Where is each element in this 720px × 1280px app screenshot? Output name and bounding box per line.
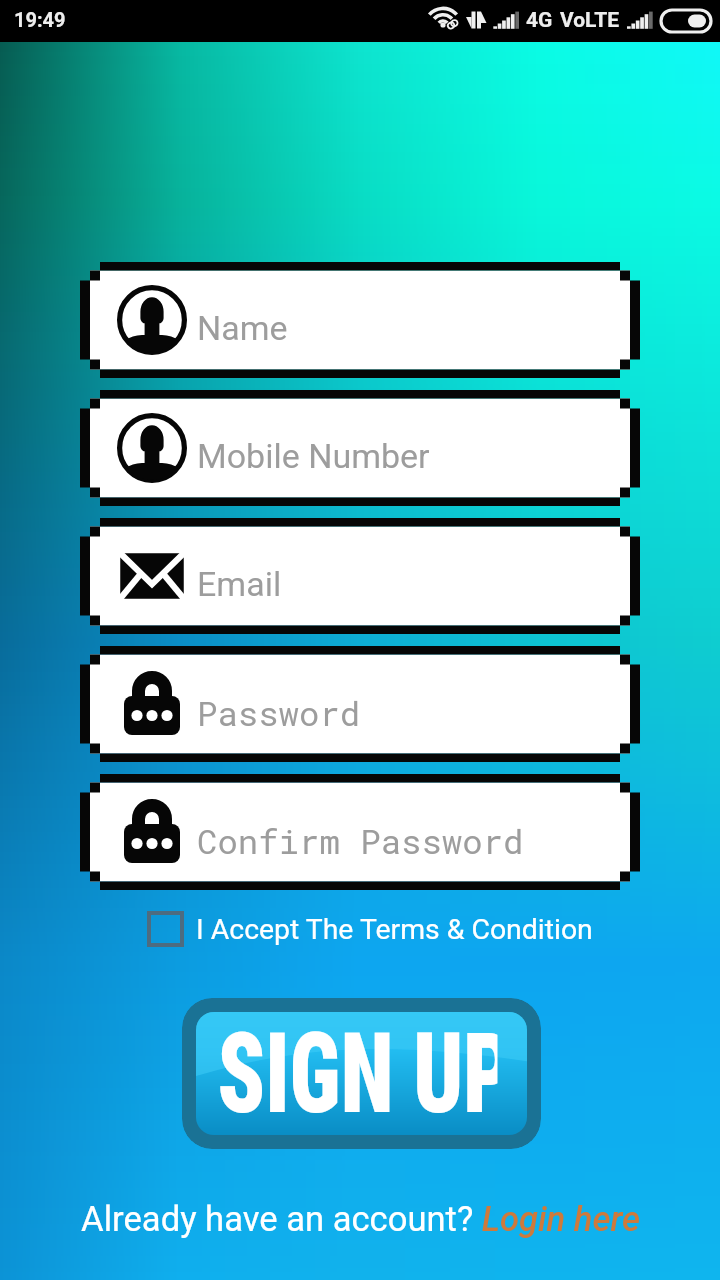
- button[interactable]: Name: [80, 262, 640, 378]
- staticText: I Accept The Terms & Condition: [196, 913, 593, 946]
- staticText: Already have an account? Login here: [81, 1199, 640, 1240]
- button[interactable]: Email: [80, 518, 640, 634]
- staticText: 19:49: [14, 8, 66, 31]
- staticText: VoLTE: [560, 8, 619, 33]
- button[interactable]: Confirm Password: [80, 774, 640, 890]
- staticText: Mobile Number: [197, 436, 430, 476]
- button[interactable]: Mobile Number: [80, 390, 640, 506]
- staticText: Password: [197, 690, 361, 735]
- button[interactable]: SIGN UP: [182, 998, 541, 1149]
- staticText: Confirm Password: [197, 818, 524, 863]
- staticText: SIGN UP: [217, 1009, 497, 1139]
- button[interactable]: Password: [80, 646, 640, 762]
- staticText: Name: [197, 308, 288, 348]
- staticText: 4G: [526, 8, 553, 33]
- button[interactable]: I Accept The Terms & Condition: [147, 906, 593, 952]
- staticText: Email: [197, 564, 282, 604]
